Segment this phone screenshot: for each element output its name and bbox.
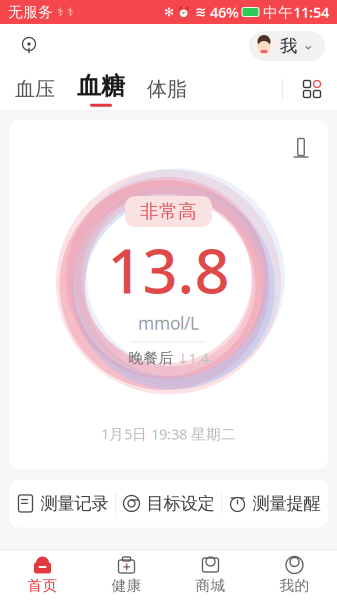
button[interactable]: 目标设定 — [116, 479, 221, 527]
staticText: 非常高 — [140, 200, 197, 223]
staticText: 血糖 — [77, 71, 125, 101]
button[interactable]: 编辑 — [286, 132, 316, 162]
staticText: 中午11:54 — [259, 2, 329, 22]
button[interactable]: 测量记录 — [10, 479, 115, 527]
button[interactable]: 血压 — [4, 69, 66, 109]
staticText: 13.8 — [107, 229, 229, 310]
button[interactable]: 首页 — [0, 550, 84, 600]
staticText: 血压 — [15, 77, 55, 101]
staticText: 首页 — [27, 576, 57, 594]
staticText: ⌄ — [302, 36, 314, 53]
staticText: 商城 — [195, 576, 225, 594]
staticText: 测量记录 — [40, 493, 108, 514]
button[interactable]: 商城 — [168, 550, 252, 600]
staticText: ⏰ — [174, 5, 190, 19]
staticText: 无服务 — [8, 3, 53, 21]
staticText: 目标设定 — [146, 493, 214, 514]
staticText: 我的 — [279, 576, 309, 594]
staticText: ✻ — [164, 5, 174, 19]
staticText: ↓1.4 — [176, 348, 208, 368]
staticText: ≋ — [190, 4, 206, 19]
staticText: 1月5日 19:38 星期二 — [101, 424, 236, 443]
staticText: mmol/L — [138, 311, 199, 334]
button[interactable]: 我 — [249, 31, 325, 61]
staticText: ⚕ ⚕ — [53, 5, 73, 19]
button[interactable]: + — [84, 550, 168, 600]
staticText: 体脂 — [147, 77, 187, 101]
staticText: 健康 — [111, 576, 141, 594]
staticText: 46% — [206, 2, 239, 22]
button[interactable]: 更多功能 — [295, 69, 329, 109]
button[interactable]: 我的 — [252, 550, 336, 600]
button[interactable]: 体脂 — [136, 69, 198, 109]
staticText: + — [122, 557, 130, 576]
staticText: 我 — [280, 35, 297, 57]
button[interactable]: 位置 — [12, 29, 46, 63]
button[interactable]: 测量提醒 — [222, 479, 327, 527]
staticText: 晚餐后 — [128, 349, 173, 367]
staticText: 测量提醒 — [252, 493, 320, 514]
button[interactable]: 血糖 — [66, 69, 136, 109]
